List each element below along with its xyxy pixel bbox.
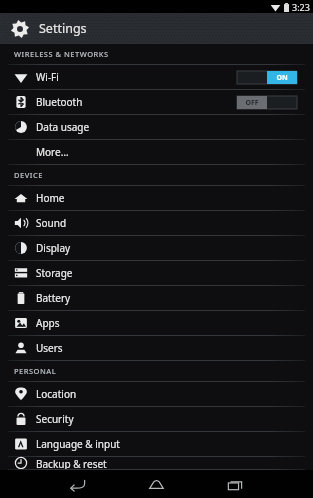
staticText: Bluetooth bbox=[36, 95, 83, 109]
button[interactable]: Recent apps bbox=[218, 470, 252, 498]
staticText: More… bbox=[36, 145, 69, 159]
staticText: Apps bbox=[36, 316, 60, 330]
staticText: OFF bbox=[237, 98, 267, 108]
button[interactable]: Language & input bbox=[0, 432, 313, 457]
button[interactable]: Battery bbox=[0, 286, 313, 311]
staticText: Security bbox=[36, 412, 74, 426]
staticText: Sound bbox=[36, 216, 67, 230]
staticText: Storage bbox=[36, 266, 73, 280]
button[interactable]: Backup & reset bbox=[0, 457, 313, 470]
button[interactable]: Apps bbox=[0, 311, 313, 336]
button[interactable]: Wi-Fi bbox=[0, 65, 313, 90]
button[interactable]: Back bbox=[60, 470, 94, 498]
staticText: ON bbox=[267, 73, 297, 83]
staticText: Users bbox=[36, 341, 63, 355]
button[interactable]: Sound bbox=[0, 211, 313, 236]
staticText: PERSONAL bbox=[14, 366, 57, 376]
staticText: Backup & reset bbox=[36, 457, 107, 469]
button[interactable]: Storage bbox=[0, 261, 313, 286]
staticText: DEVICE bbox=[14, 170, 43, 180]
button[interactable]: More… bbox=[0, 140, 313, 165]
staticText: Language & input bbox=[36, 437, 120, 451]
staticText: 3:23 bbox=[292, 1, 310, 13]
staticText: Settings bbox=[39, 20, 87, 37]
staticText: Display bbox=[36, 241, 71, 255]
button[interactable]: Location bbox=[0, 382, 313, 407]
button[interactable]: Settings bbox=[0, 13, 313, 44]
staticText: Home bbox=[36, 191, 65, 205]
button[interactable]: Home bbox=[139, 470, 173, 498]
staticText: Data usage bbox=[36, 120, 90, 134]
button[interactable]: Toggle on bbox=[237, 71, 297, 84]
staticText: Battery bbox=[36, 291, 71, 305]
staticText: Wi-Fi bbox=[36, 70, 59, 84]
staticText: Location bbox=[36, 387, 77, 401]
button[interactable]: Users bbox=[0, 336, 313, 361]
button[interactable]: Security bbox=[0, 407, 313, 432]
button[interactable]: Data usage bbox=[0, 115, 313, 140]
button[interactable]: Bluetooth bbox=[0, 90, 313, 115]
button[interactable]: Home bbox=[0, 186, 313, 211]
staticText: WIRELESS & NETWORKS bbox=[14, 49, 109, 59]
button[interactable]: Display bbox=[0, 236, 313, 261]
button[interactable]: Toggle off bbox=[237, 96, 297, 109]
